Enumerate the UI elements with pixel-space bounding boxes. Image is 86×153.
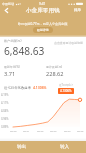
staticText: 05.24 xyxy=(64,129,71,132)
button[interactable]: Back xyxy=(0,4,13,17)
staticText: 3.96% xyxy=(1,117,9,121)
staticText: 点击查看累计收益明细 xyxy=(54,41,83,45)
staticText: 3.71 xyxy=(4,70,16,78)
button[interactable]: 转出 xyxy=(0,141,43,153)
staticText: 9:41 xyxy=(39,2,46,6)
staticText: 05.21 xyxy=(23,129,30,132)
staticText: 4.1306% xyxy=(60,89,72,93)
staticText: 昨日收益0.77元，已存入小金库余额 xyxy=(18,22,68,26)
button[interactable]: 点击查看累计收益明细 xyxy=(54,41,83,45)
staticText: 转入 xyxy=(60,144,70,150)
staticText: 转出 xyxy=(17,144,27,150)
staticText: 近七日年化收益率 xyxy=(4,86,32,90)
staticText: 05.22 xyxy=(37,129,44,132)
button[interactable]: 收益详情 xyxy=(33,27,53,33)
staticText: 收益详情 xyxy=(37,28,49,32)
staticText: 3.89% xyxy=(1,125,9,129)
staticText: 4.1306% xyxy=(33,85,47,90)
staticText: 账单 xyxy=(74,8,82,13)
staticText: 6,848.63 xyxy=(4,44,45,58)
staticText: 最新年化(%) xyxy=(4,65,20,69)
staticText: 4.19% xyxy=(1,93,9,97)
staticText: 账户总额(元) xyxy=(4,39,22,43)
staticText: 4.11% xyxy=(1,101,9,105)
button[interactable]: 4.1306% xyxy=(58,88,74,94)
staticText: 小金库零用钱 xyxy=(26,7,60,14)
staticText: 05.20 xyxy=(10,129,17,132)
staticText: 近7日年化 > xyxy=(59,83,74,87)
staticText: 4.04% xyxy=(1,109,9,113)
staticText: 05.25 xyxy=(77,129,84,132)
button[interactable]: 账单 xyxy=(70,5,86,16)
button[interactable]: 转入 xyxy=(43,141,86,153)
staticText: 累计收益(元) xyxy=(46,65,63,69)
staticText: 中国移动 xyxy=(2,2,14,6)
staticText: 05.23 xyxy=(50,129,57,132)
staticText: 228.62 xyxy=(46,70,64,78)
